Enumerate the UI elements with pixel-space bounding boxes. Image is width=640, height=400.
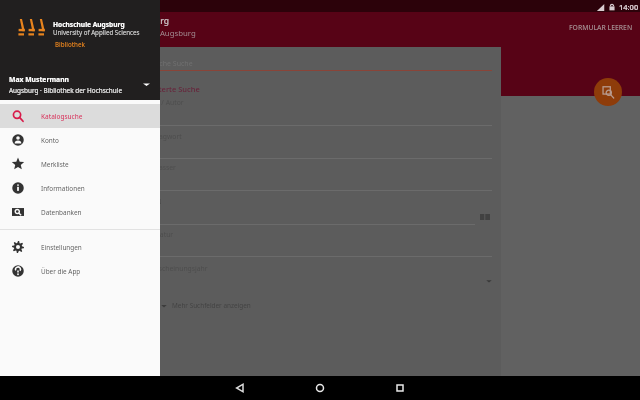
staticText: 14:00 bbox=[619, 2, 639, 12]
button[interactable]: Merkliste bbox=[0, 152, 160, 176]
staticText: Merkliste bbox=[41, 160, 69, 169]
button[interactable] bbox=[130, 273, 492, 289]
button[interactable]: Katalogsuche bbox=[0, 104, 160, 128]
staticText: FORMULAR LEEREN bbox=[569, 23, 633, 32]
staticText: Erweiterte Suche bbox=[139, 84, 200, 94]
staticText: Titel / Autor bbox=[146, 98, 184, 107]
button[interactable]: Home bbox=[280, 376, 360, 400]
staticText: Max Mustermann bbox=[9, 75, 69, 84]
staticText: University of Applied Sciences bbox=[53, 28, 140, 36]
staticText: Katalogsuche bbox=[41, 112, 83, 121]
staticText: Konto bbox=[41, 136, 59, 145]
staticText: Bibliothek bbox=[55, 40, 85, 48]
button[interactable]: Mehr Suchfelder anzeigen bbox=[159, 299, 253, 312]
button[interactable]: Recents bbox=[360, 376, 440, 400]
staticText: Hochschule Augsburg bbox=[80, 15, 170, 27]
button[interactable]: Max Mustermann bbox=[0, 72, 160, 97]
staticText: Datenbanken bbox=[41, 208, 82, 217]
staticText: Einfache Suche bbox=[143, 59, 193, 69]
button[interactable]: Konto bbox=[0, 128, 160, 152]
staticText: Einstellungen bbox=[41, 243, 82, 252]
button[interactable]: Über die App bbox=[0, 259, 160, 283]
staticText: Mehr Suchfelder anzeigen bbox=[172, 301, 251, 310]
staticText: ISBN bbox=[146, 197, 162, 206]
button[interactable]: Informationen bbox=[0, 176, 160, 200]
staticText: Verfasser bbox=[146, 163, 176, 172]
button[interactable]: Einstellungen bbox=[0, 235, 160, 259]
button[interactable]: Back bbox=[200, 376, 280, 400]
staticText: Medienart / Erscheinungsjahr bbox=[113, 264, 208, 273]
button[interactable]: FORMULAR LEEREN bbox=[566, 21, 636, 34]
staticText: Über die App bbox=[41, 267, 81, 276]
staticText: Bibliothek der Hochschule Augsburg bbox=[62, 28, 196, 39]
staticText: Informationen bbox=[41, 184, 85, 193]
staticText: Hochschule Augsburg bbox=[53, 20, 125, 29]
button[interactable]: Suchen bbox=[594, 78, 622, 106]
staticText: Schlagwort bbox=[146, 132, 182, 141]
button[interactable]: Barcode scannen bbox=[478, 210, 492, 224]
staticText: Augsburg · Bibliothek der Hochschule bbox=[9, 86, 123, 95]
button[interactable]: Datenbanken bbox=[0, 200, 160, 224]
staticText: Signatur bbox=[146, 230, 174, 239]
